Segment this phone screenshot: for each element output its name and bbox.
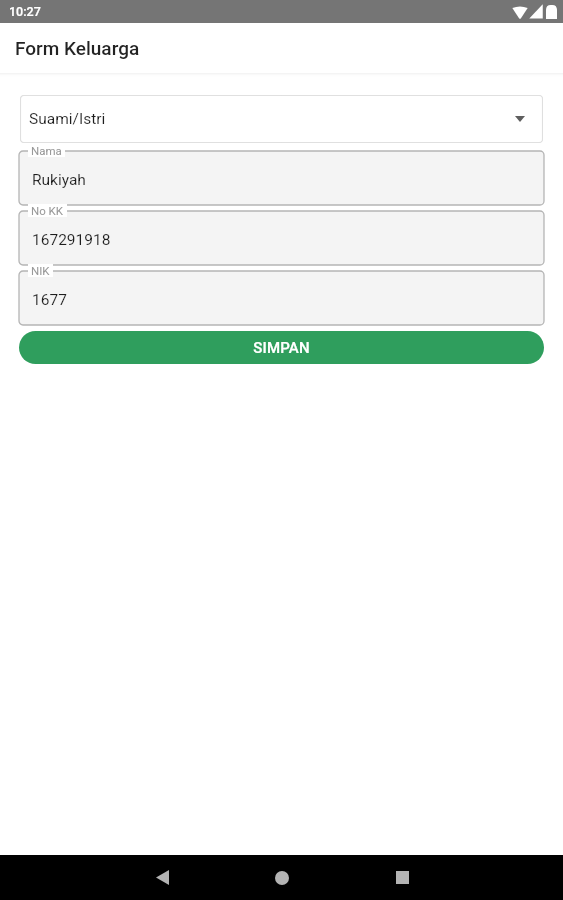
button[interactable]: Nama xyxy=(19,151,544,205)
staticText: 10:27 xyxy=(9,4,41,19)
staticText: Nama xyxy=(31,144,62,157)
button[interactable]: Back xyxy=(132,855,192,900)
staticText: Suami/Istri xyxy=(29,110,106,128)
staticText: Rukiyah xyxy=(32,171,86,189)
staticText: SIMPAN xyxy=(253,339,310,357)
staticText: Form Keluarga xyxy=(15,37,140,59)
button[interactable]: NIK xyxy=(19,271,544,325)
staticText: No KK xyxy=(31,204,64,217)
button[interactable]: Recent apps xyxy=(372,855,432,900)
button[interactable]: Home xyxy=(252,855,312,900)
staticText: NIK xyxy=(31,264,50,277)
button[interactable]: Suami/Istri xyxy=(20,95,543,143)
button[interactable]: No KK xyxy=(19,211,544,265)
button[interactable]: SIMPAN xyxy=(19,331,544,364)
staticText: 167291918 xyxy=(32,231,111,249)
staticText: 1677 xyxy=(32,291,67,309)
